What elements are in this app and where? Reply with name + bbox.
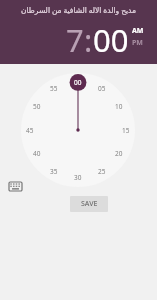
- button[interactable]: Switch to text input: [6, 179, 24, 193]
- button[interactable]: 15: [118, 126, 134, 135]
- button[interactable]: SAVE: [70, 196, 108, 212]
- button[interactable]: 30: [70, 173, 86, 182]
- staticText: 25: [98, 167, 106, 176]
- staticText: 00: [74, 78, 82, 87]
- staticText: :: [84, 19, 93, 61]
- staticText: 05: [98, 84, 106, 93]
- button[interactable]: 55: [46, 84, 62, 93]
- staticText: 30: [74, 173, 82, 182]
- button[interactable]: 7: [66, 19, 84, 61]
- button[interactable]: 45: [22, 126, 38, 135]
- button[interactable]: 25: [94, 167, 110, 176]
- staticText: مديح والدة الاله الشافية من السرطان: [21, 5, 137, 15]
- button[interactable]: AM: [132, 26, 144, 36]
- staticText: 40: [33, 149, 41, 158]
- staticText: 15: [122, 126, 130, 135]
- staticText: SAVE: [81, 199, 98, 209]
- staticText: 10: [115, 102, 123, 111]
- button[interactable]: 20: [111, 149, 127, 158]
- button[interactable]: 05: [94, 84, 110, 93]
- button[interactable]: 40: [29, 149, 45, 158]
- staticText: 50: [33, 102, 41, 111]
- button[interactable]: 00: [93, 19, 129, 61]
- button[interactable]: PM: [132, 38, 143, 48]
- button[interactable]: 35: [46, 167, 62, 176]
- staticText: 45: [26, 126, 34, 135]
- staticText: 35: [50, 167, 58, 176]
- button[interactable]: 10: [111, 102, 127, 111]
- staticText: 20: [115, 149, 123, 158]
- button[interactable]: 50: [29, 102, 45, 111]
- staticText: 55: [50, 84, 58, 93]
- button[interactable]: 00: [70, 78, 86, 87]
